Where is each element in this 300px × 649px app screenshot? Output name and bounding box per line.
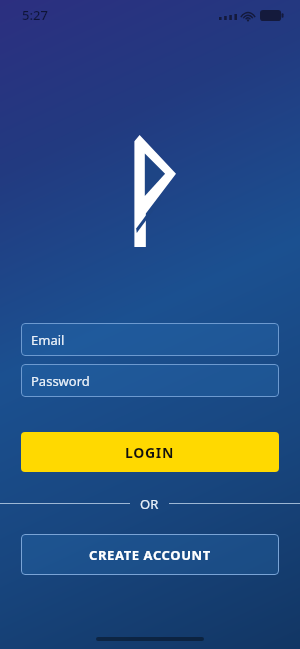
staticText: OR (140, 495, 159, 511)
button[interactable]: LOGIN (21, 432, 279, 472)
button[interactable]: Password (21, 364, 279, 397)
button[interactable]: CREATE ACCOUNT (21, 534, 279, 575)
staticText: CREATE ACCOUNT (89, 546, 211, 564)
button[interactable]: Email (21, 323, 279, 356)
staticText: Password (31, 372, 90, 390)
staticText: Email (31, 331, 65, 349)
staticText: 5:27 (22, 6, 48, 24)
staticText: LOGIN (125, 443, 175, 462)
